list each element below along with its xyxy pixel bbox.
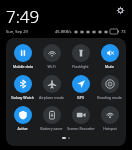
staticText: Mobile data bbox=[13, 64, 33, 69]
staticText: Flashlight bbox=[72, 64, 89, 69]
button[interactable]: Mute bbox=[95, 42, 124, 71]
staticText: Hotspot bbox=[103, 126, 117, 131]
staticText: Wi-Fi bbox=[47, 64, 56, 69]
button[interactable]: Battery saver bbox=[37, 103, 66, 133]
button[interactable]: Airplane mode bbox=[37, 72, 66, 102]
button[interactable]: Galaxy Watch bbox=[8, 72, 37, 102]
staticText: GPS bbox=[77, 95, 84, 100]
button[interactable]: Mobile data bbox=[8, 42, 37, 71]
staticText: Screen Recorder bbox=[67, 126, 95, 131]
button[interactable]: Wi-Fi bbox=[37, 42, 66, 71]
staticText: Airplane mode bbox=[39, 95, 64, 100]
button[interactable]: Flashlight bbox=[66, 42, 95, 71]
staticText: 7:49 bbox=[6, 5, 40, 28]
staticText: Battery saver bbox=[40, 126, 63, 131]
staticText: Mute bbox=[105, 64, 114, 69]
staticText: 45.8KB/s bbox=[55, 29, 72, 34]
staticText: Reading mode bbox=[97, 95, 122, 100]
staticText: 73 bbox=[121, 29, 126, 34]
button[interactable]: Active bbox=[8, 103, 37, 133]
button[interactable]: Hotspot bbox=[95, 103, 124, 133]
staticText: Galaxy Watch bbox=[11, 95, 34, 100]
button[interactable]: Settings bbox=[114, 4, 126, 16]
button[interactable]: GPS bbox=[66, 72, 95, 102]
button[interactable]: Reading mode bbox=[95, 72, 124, 102]
staticText: Sun, Sep 29 bbox=[6, 29, 28, 34]
button[interactable]: Screen Recorder bbox=[66, 103, 95, 133]
staticText: Active bbox=[17, 126, 28, 131]
